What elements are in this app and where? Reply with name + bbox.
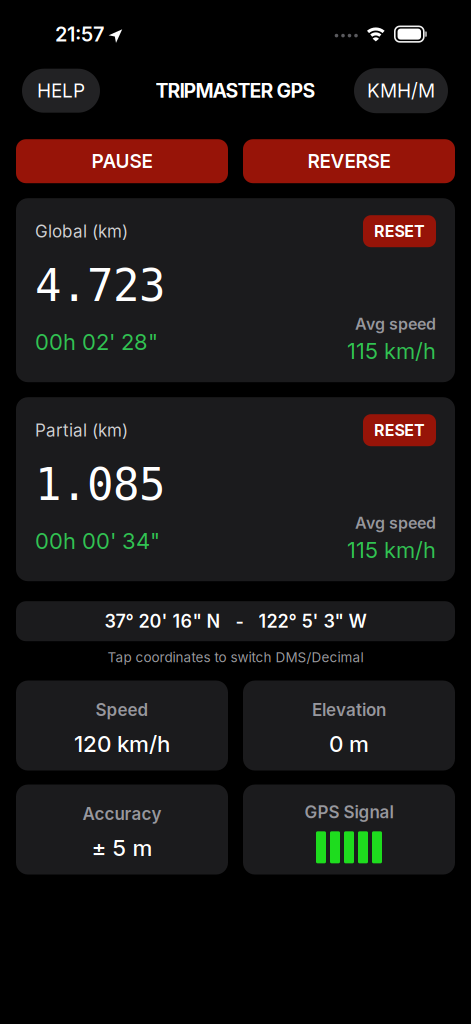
staticText: 0 m — [329, 730, 369, 757]
staticText: 00h 02' 28" — [35, 329, 158, 355]
button[interactable]: REVERSE — [243, 139, 455, 183]
staticText: Accuracy — [82, 804, 161, 824]
staticText: Speed — [95, 700, 148, 720]
button[interactable]: HELP — [22, 69, 100, 113]
staticText: Partial (km) — [35, 420, 128, 440]
staticText: 120 km/h — [74, 730, 170, 757]
staticText: ± 5 m — [91, 834, 152, 861]
staticText: 115 km/h — [347, 338, 436, 364]
button[interactable]: PAUSE — [16, 139, 228, 183]
staticText: PAUSE — [91, 150, 152, 173]
staticText: GPS Signal — [304, 802, 393, 822]
staticText: 1.085 — [35, 459, 165, 510]
staticText: Global (km) — [35, 221, 128, 241]
button[interactable]: 37° 20' 16" N - 122° 5' 3" W — [16, 601, 455, 641]
staticText: RESET — [374, 221, 425, 241]
staticText: REVERSE — [307, 150, 390, 173]
staticText: 4.723 — [35, 260, 165, 311]
staticText: Avg speed — [355, 314, 436, 334]
staticText: TRIPMASTER GPS — [155, 79, 315, 102]
staticText: HELP — [37, 79, 85, 102]
button[interactable]: KMH/M — [354, 68, 448, 113]
staticText: KMH/M — [367, 79, 435, 102]
staticText: Elevation — [312, 700, 386, 720]
staticText: 115 km/h — [347, 537, 436, 563]
button[interactable]: RESET — [363, 215, 436, 247]
staticText: 21:57 — [55, 22, 104, 46]
button[interactable]: RESET — [363, 414, 436, 446]
staticText: 37° 20' 16" N - 122° 5' 3" W — [104, 610, 366, 632]
staticText: RESET — [374, 420, 425, 440]
staticText: Tap coordinates to switch DMS/Decimal — [107, 649, 363, 665]
staticText: Avg speed — [355, 513, 436, 533]
staticText: 00h 00' 34" — [35, 528, 160, 554]
